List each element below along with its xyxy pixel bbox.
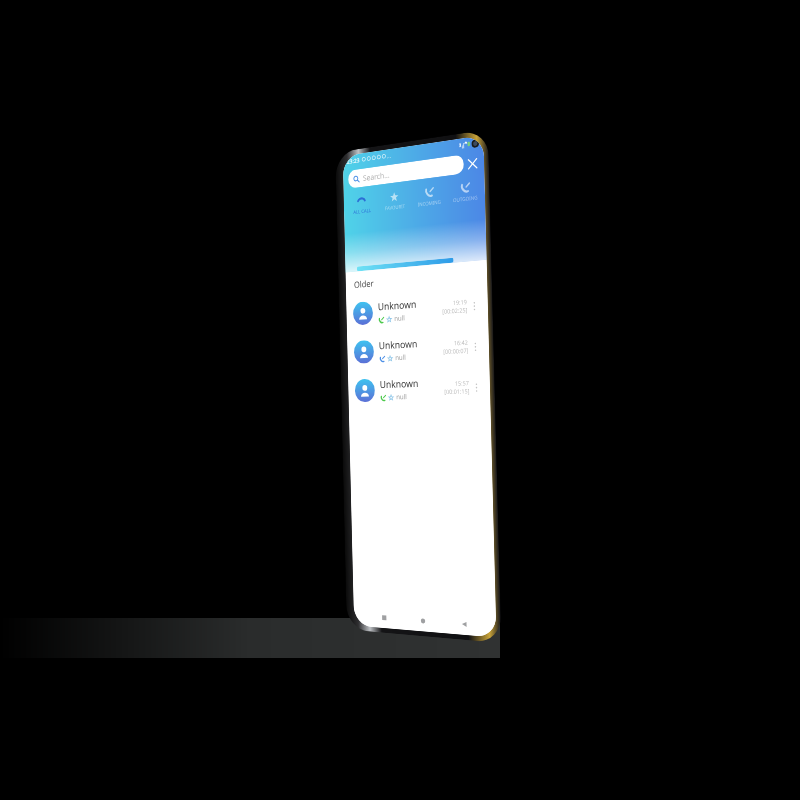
staticText: null xyxy=(396,392,407,402)
staticText: null xyxy=(395,353,406,363)
button[interactable]: More options xyxy=(468,326,482,367)
button[interactable]: Unknown xyxy=(348,366,490,410)
other: Search xyxy=(353,175,360,183)
button[interactable]: Unknown xyxy=(346,284,488,334)
button[interactable]: INCOMING xyxy=(411,180,447,214)
staticText: 19:19 xyxy=(453,298,467,307)
staticText: Unknown xyxy=(379,336,417,352)
staticText: OUTGOING xyxy=(453,194,478,204)
button[interactable]: Search xyxy=(348,154,464,189)
staticText: INCOMING xyxy=(417,199,441,208)
button[interactable]: FAVOURIT xyxy=(377,184,411,218)
staticText: [00:02:25] xyxy=(442,306,468,316)
staticText: Search... xyxy=(363,169,390,183)
button[interactable]: Back xyxy=(454,613,473,635)
staticText: FAVOURIT xyxy=(385,203,405,212)
button[interactable]: More options xyxy=(469,366,483,408)
staticText: 23:23 xyxy=(347,156,360,166)
staticText: Unknown xyxy=(378,297,417,313)
staticText: [00:00:07] xyxy=(443,347,469,356)
button[interactable]: ALL CALL xyxy=(345,189,378,222)
staticText: null xyxy=(394,313,406,324)
button[interactable]: OUTGOING xyxy=(446,175,483,210)
staticText: ALL CALL xyxy=(353,207,371,216)
staticText: 16:42 xyxy=(454,339,469,347)
button[interactable]: Close xyxy=(464,153,481,173)
staticText: Unknown xyxy=(380,376,419,391)
button[interactable]: Recents xyxy=(375,607,393,628)
button[interactable]: Unknown xyxy=(347,325,489,372)
staticText: 15:57 xyxy=(455,379,470,388)
button[interactable]: Home xyxy=(414,610,432,631)
staticText: Older xyxy=(354,277,374,290)
staticText: [00:01:15] xyxy=(444,387,470,396)
button[interactable]: More options xyxy=(467,285,481,326)
staticText: ... xyxy=(387,152,391,160)
